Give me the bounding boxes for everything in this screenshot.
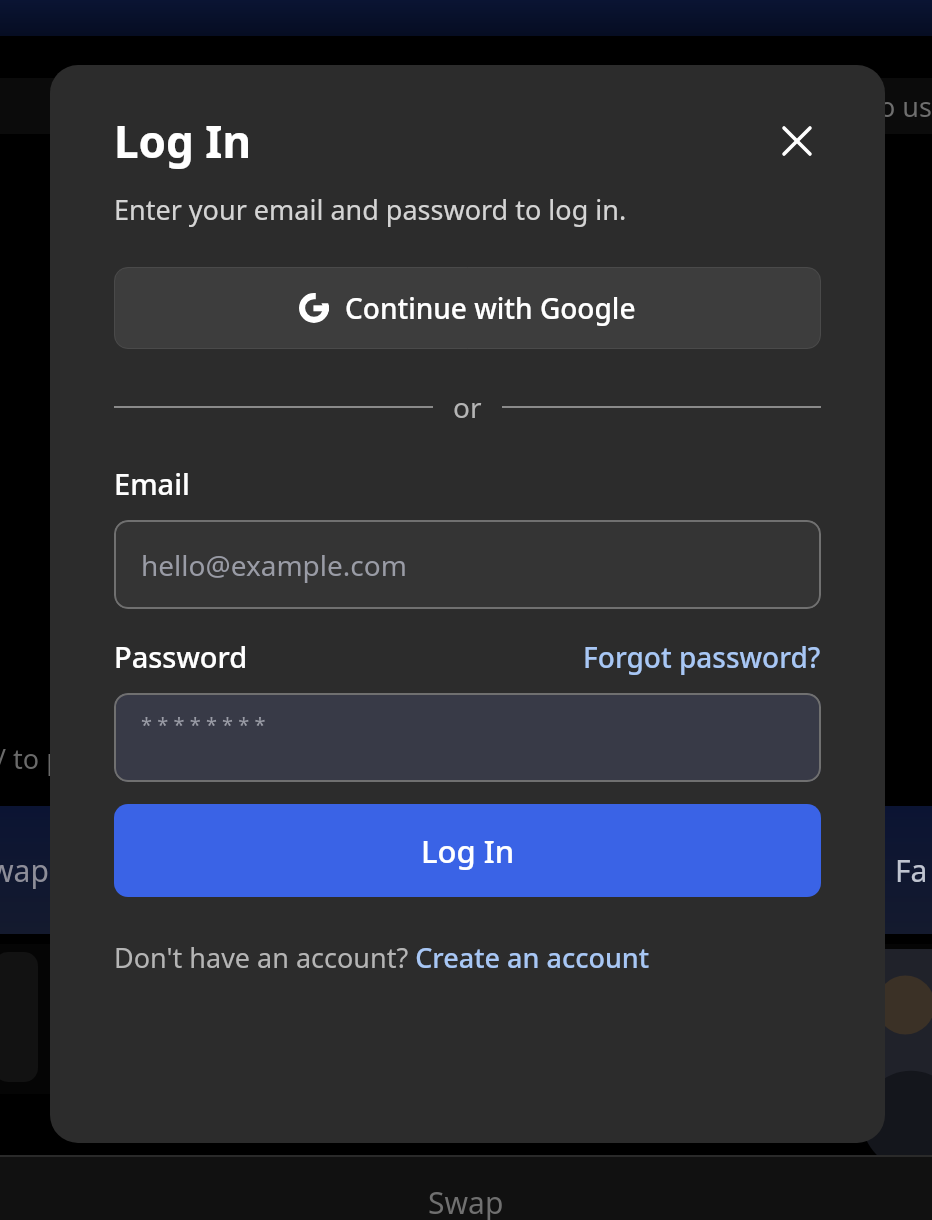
- staticText: Enter your email and password to log in.: [114, 191, 627, 228]
- button[interactable]: Don't have an account? Create an account: [114, 939, 650, 976]
- staticText: hello@example.com: [141, 546, 407, 584]
- button[interactable]: Continue with Google: [114, 267, 821, 349]
- button[interactable]: * * * * * * * *: [114, 693, 821, 782]
- button[interactable]: Log In: [114, 804, 821, 897]
- staticText: Log In: [421, 830, 515, 872]
- staticText: or: [453, 388, 482, 426]
- staticText: Forgot password?: [583, 638, 821, 676]
- staticText: Continue with Google: [345, 289, 636, 327]
- staticText: Email: [114, 464, 190, 503]
- button[interactable]: Forgot password?: [583, 638, 821, 676]
- staticText: / to p: [0, 740, 63, 777]
- staticText: Swap: [428, 1182, 504, 1220]
- staticText: * * * * * * * *: [141, 711, 266, 738]
- staticText: wap: [0, 850, 49, 891]
- staticText: Don't have an account? Create an account: [114, 939, 650, 976]
- button[interactable]: hello@example.com: [114, 520, 821, 609]
- staticText: Log In: [114, 111, 773, 171]
- staticText: Fa: [895, 850, 928, 891]
- button[interactable]: Close: [773, 117, 821, 165]
- staticText: o us: [879, 88, 932, 125]
- staticText: Password: [114, 637, 583, 676]
